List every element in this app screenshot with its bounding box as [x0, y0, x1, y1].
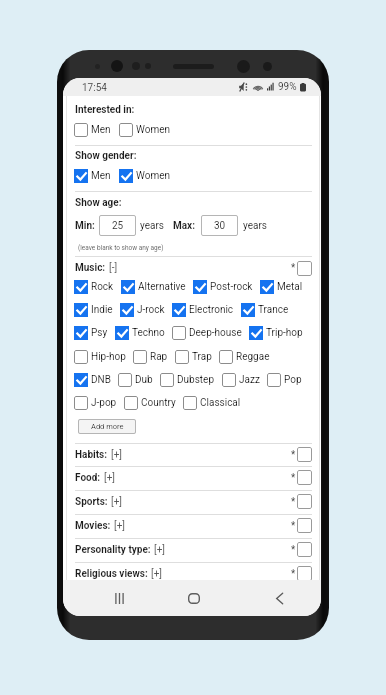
staticText: Religious views:: [75, 568, 148, 580]
staticText: Show age:: [75, 197, 122, 209]
button[interactable]: Trap: [175, 350, 212, 364]
button[interactable]: Add more: [78, 419, 136, 434]
button[interactable]: Classical: [183, 396, 241, 410]
staticText: Music:: [75, 262, 106, 274]
button[interactable]: Personality type:: [75, 539, 312, 560]
staticText: [+]: [104, 472, 115, 484]
staticText: J-pop: [91, 397, 117, 409]
staticText: Show gender:: [75, 150, 137, 162]
staticText: J-rock: [137, 304, 165, 316]
button[interactable]: Techno: [115, 326, 165, 340]
staticText: Psy: [91, 327, 108, 339]
button[interactable]: Men: [74, 123, 111, 137]
staticText: Sports:: [75, 496, 108, 508]
staticText: Alternative: [138, 281, 186, 293]
button[interactable]: Home: [178, 580, 210, 616]
staticText: years: [140, 220, 164, 232]
staticText: [+]: [111, 496, 122, 508]
staticText: Country: [141, 397, 176, 409]
staticText: Techno: [132, 327, 165, 339]
button[interactable]: Men: [74, 169, 111, 183]
button[interactable]: Psy: [74, 326, 108, 340]
button[interactable]: Indie: [74, 303, 113, 317]
staticText: Electronic: [189, 304, 234, 316]
staticText: Dub: [135, 374, 153, 386]
staticText: 99%: [278, 81, 297, 93]
button[interactable]: Women: [119, 169, 171, 183]
button[interactable]: Dubstep: [160, 373, 215, 387]
button[interactable]: 30: [201, 215, 238, 236]
button[interactable]: Women: [119, 123, 171, 137]
staticText: [-]: [109, 262, 118, 274]
staticText: *: [291, 568, 296, 580]
button[interactable]: Food:: [75, 467, 312, 488]
staticText: 25: [112, 220, 124, 232]
staticText: Men: [91, 170, 111, 182]
staticText: years: [243, 220, 267, 232]
button[interactable]: Rock: [74, 280, 114, 294]
button[interactable]: Metal: [260, 280, 303, 294]
staticText: Trance: [258, 304, 289, 316]
button[interactable]: Dub: [118, 373, 153, 387]
button[interactable]: Hip-hop: [74, 350, 126, 364]
staticText: Food:: [75, 472, 101, 484]
button[interactable]: Reggae: [219, 350, 270, 364]
button[interactable]: Electronic: [172, 303, 234, 317]
staticText: Jazz: [239, 374, 260, 386]
button[interactable]: Recents: [103, 580, 135, 616]
staticText: Post-rock: [210, 281, 253, 293]
staticText: Deep-house: [189, 327, 242, 339]
staticText: Indie: [91, 304, 113, 316]
staticText: *: [291, 449, 296, 461]
button[interactable]: Jazz: [222, 373, 260, 387]
staticText: Rap: [150, 351, 168, 363]
staticText: [+]: [111, 449, 122, 461]
button[interactable]: Pop: [267, 373, 302, 387]
staticText: Movies:: [75, 520, 111, 532]
staticText: (leave blank to show any age): [78, 244, 164, 252]
staticText: Personality type:: [75, 544, 151, 556]
button[interactable]: J-rock: [120, 303, 165, 317]
button[interactable]: Post-rock: [193, 280, 253, 294]
staticText: [+]: [154, 544, 165, 556]
staticText: [+]: [151, 568, 162, 580]
button[interactable]: Trip-hop: [249, 326, 303, 340]
button[interactable]: J-pop: [74, 396, 117, 410]
staticText: 30: [214, 220, 226, 232]
staticText: Metal: [277, 281, 303, 293]
staticText: Pop: [284, 374, 302, 386]
button[interactable]: Back: [263, 580, 295, 616]
staticText: Trap: [192, 351, 212, 363]
button[interactable]: Religious views:: [75, 563, 312, 584]
staticText: Interested in:: [75, 104, 135, 116]
button[interactable]: Country: [124, 396, 176, 410]
staticText: Reggae: [236, 351, 270, 363]
staticText: Women: [136, 170, 171, 182]
button[interactable]: Rap: [133, 350, 168, 364]
staticText: *: [291, 472, 296, 484]
button[interactable]: Trance: [241, 303, 289, 317]
staticText: 17:54: [82, 82, 107, 94]
staticText: *: [291, 262, 296, 274]
staticText: Min:: [75, 220, 95, 232]
staticText: Rock: [91, 281, 114, 293]
button[interactable]: Deep-house: [172, 326, 242, 340]
staticText: Men: [91, 124, 111, 136]
staticText: Women: [136, 124, 171, 136]
staticText: Habits:: [75, 449, 108, 461]
staticText: DNB: [91, 374, 111, 386]
button[interactable]: Music:: [75, 260, 312, 276]
staticText: Hip-hop: [91, 351, 126, 363]
button[interactable]: 25: [99, 215, 136, 236]
button[interactable]: Movies:: [75, 515, 312, 536]
button[interactable]: Sports:: [75, 491, 312, 512]
staticText: *: [291, 496, 296, 508]
button[interactable]: Alternative: [121, 280, 186, 294]
button[interactable]: DNB: [74, 373, 111, 387]
staticText: Add more: [91, 422, 124, 431]
staticText: *: [291, 520, 296, 532]
staticText: *: [291, 544, 296, 556]
button[interactable]: Habits:: [75, 444, 312, 465]
staticText: Dubstep: [177, 374, 215, 386]
staticText: [+]: [114, 520, 125, 532]
